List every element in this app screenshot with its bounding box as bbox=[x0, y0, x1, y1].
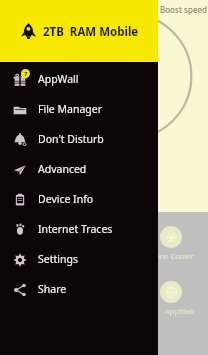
staticText: Advanced bbox=[38, 162, 87, 176]
button[interactable]: Share bbox=[0, 274, 158, 304]
staticText: Internet Traces bbox=[38, 222, 113, 236]
staticText: Share bbox=[38, 282, 67, 296]
button[interactable]: Don't Disturb bbox=[0, 124, 158, 154]
button[interactable]: Internet Traces bbox=[0, 214, 158, 244]
staticText: AppWall bbox=[165, 306, 194, 316]
staticText: File Manager bbox=[38, 102, 103, 116]
button[interactable]: 7 bbox=[0, 64, 158, 94]
button[interactable]: Device Info bbox=[0, 184, 158, 214]
button[interactable]: File Manager bbox=[0, 94, 158, 124]
staticText: AppWall bbox=[38, 72, 79, 86]
button[interactable]: 2TB RAM Mobile bbox=[0, 0, 158, 62]
staticText: Phone Cooler bbox=[146, 251, 194, 261]
staticText: 2TB RAM Mobile bbox=[43, 24, 139, 40]
button[interactable]: Phone Cooler bbox=[0, 226, 208, 261]
staticText: Settings bbox=[38, 252, 78, 266]
button[interactable]: AppWall bbox=[0, 281, 208, 316]
staticText: Boost speed bbox=[160, 4, 208, 15]
button[interactable]: Settings bbox=[0, 244, 158, 274]
staticText: Don't Disturb bbox=[38, 132, 104, 146]
staticText: Device Info bbox=[38, 192, 94, 206]
button[interactable]: Advanced bbox=[0, 154, 158, 184]
staticText: 7 bbox=[24, 70, 28, 78]
